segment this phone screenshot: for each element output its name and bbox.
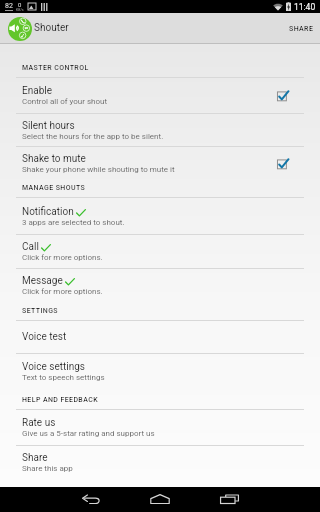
staticText: 0 (18, 1, 22, 8)
staticText: Silent hours (22, 120, 75, 132)
staticText: Click for more options. (22, 287, 103, 296)
staticText: Share this app (22, 464, 73, 473)
button[interactable]: Toggle (276, 89, 290, 103)
staticText: Give us a 5-star rating and support us (22, 429, 155, 438)
button[interactable]: Rate us (0, 410, 320, 445)
staticText: MANAGE SHOUTS (22, 184, 86, 192)
button[interactable]: Shake to mute (0, 147, 320, 180)
staticText: Control all of your shout (22, 97, 108, 106)
button[interactable]: Voice test (0, 321, 320, 353)
button[interactable]: Message (0, 269, 320, 302)
button[interactable]: Share (0, 446, 320, 478)
staticText: Notification (22, 206, 74, 218)
staticText: SETTINGS (22, 307, 59, 315)
staticText: 3 apps are selected to shout. (22, 218, 125, 227)
staticText: Share (22, 452, 48, 464)
staticText: Rate us (22, 417, 56, 429)
button[interactable]: Back (81, 487, 101, 512)
staticText: Text to speech settings (22, 373, 105, 382)
button[interactable]: Silent hours (0, 114, 320, 146)
button[interactable]: SHARE (279, 13, 320, 44)
staticText: Enable (22, 85, 52, 97)
staticText: Call (22, 241, 39, 253)
staticText: KB/s (16, 8, 24, 12)
button[interactable]: Recents (219, 487, 239, 512)
staticText: Voice settings (22, 361, 86, 373)
staticText: MASTER CONTROL (22, 64, 89, 72)
staticText: 11:40 (294, 2, 316, 12)
staticText: Shouter (34, 22, 69, 34)
button[interactable]: Call (0, 235, 320, 268)
button[interactable]: Enable (0, 78, 320, 113)
staticText: Message (22, 275, 63, 287)
button[interactable]: Home (150, 487, 170, 512)
staticText: Voice test (22, 331, 67, 343)
staticText: SHARE (289, 25, 314, 33)
button[interactable]: Voice settings (0, 354, 320, 389)
staticText: Shake your phone while shouting to mute … (22, 165, 175, 174)
staticText: 82 (5, 2, 13, 10)
button[interactable]: Notification (0, 198, 320, 234)
staticText: Shake to mute (22, 153, 86, 165)
staticText: Click for more options. (22, 253, 103, 262)
staticText: Select the hours for the app to be silen… (22, 132, 164, 141)
button[interactable]: Toggle (276, 157, 290, 171)
staticText: HELP AND FEEDBACK (22, 396, 98, 404)
